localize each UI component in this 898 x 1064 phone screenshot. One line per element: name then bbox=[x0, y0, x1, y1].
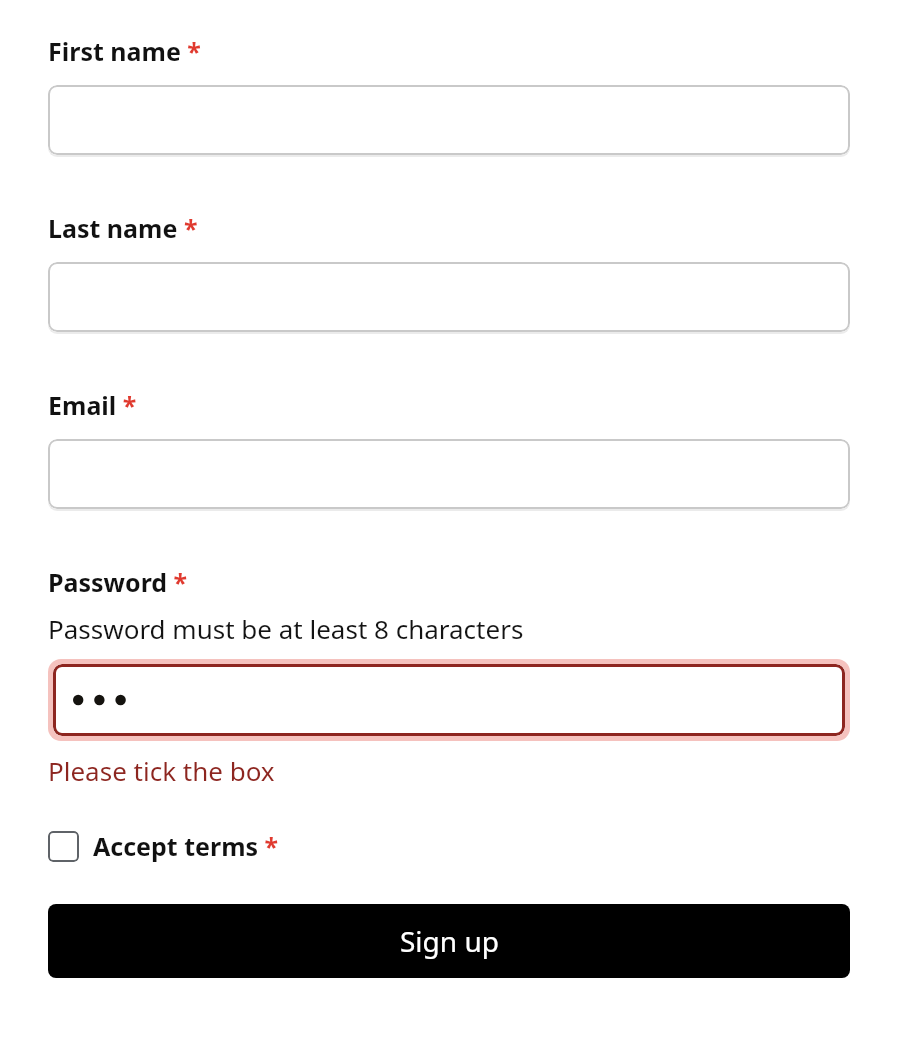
button[interactable] bbox=[48, 85, 850, 155]
staticText: Please tick the box bbox=[48, 753, 275, 788]
button[interactable]: Sign up bbox=[48, 904, 850, 978]
staticText: Email * bbox=[48, 388, 137, 422]
staticText: Last name * bbox=[48, 211, 198, 245]
staticText: Sign up bbox=[400, 922, 499, 960]
staticText: Password * bbox=[48, 565, 188, 599]
button[interactable]: Accept terms * bbox=[48, 829, 279, 863]
staticText: Accept terms * bbox=[93, 829, 279, 863]
button[interactable] bbox=[48, 439, 850, 509]
button[interactable] bbox=[48, 659, 850, 741]
staticText: Password must be at least 8 characters bbox=[48, 611, 524, 646]
button[interactable] bbox=[48, 262, 850, 332]
staticText: First name * bbox=[48, 34, 201, 68]
